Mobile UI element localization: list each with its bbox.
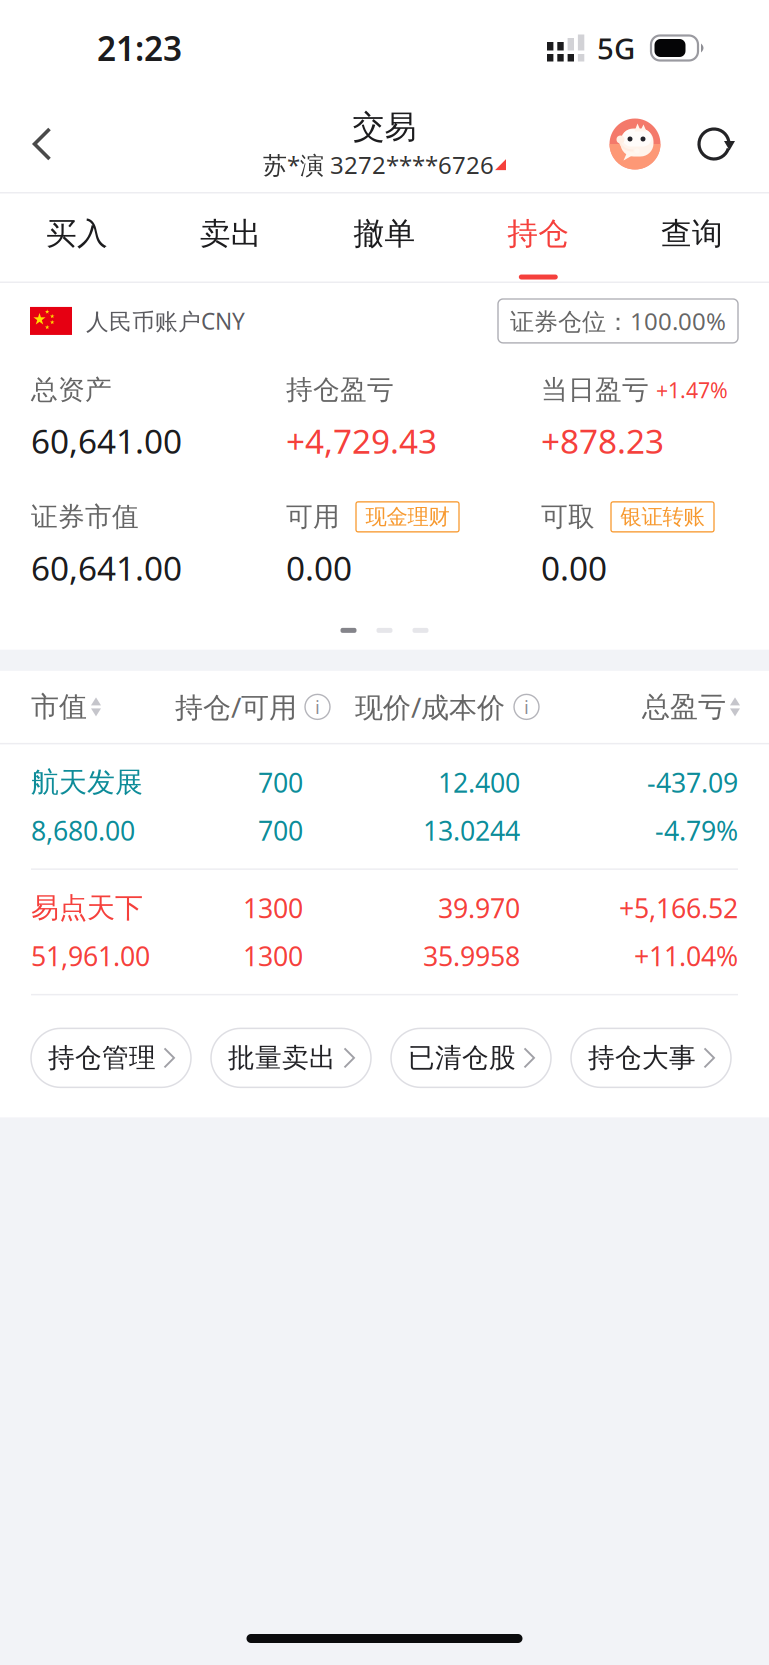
button[interactable]: 买入 [0, 193, 154, 281]
staticText: 持仓管理 [48, 1041, 156, 1074]
staticText: 易点天下 [31, 891, 143, 925]
staticText: 51,961.00 [31, 938, 150, 974]
staticText: 市值 [31, 690, 87, 724]
button[interactable]: 证券仓位：100.00% [498, 299, 738, 343]
staticText: 13.0244 [423, 813, 520, 848]
button[interactable]: Customer service [603, 109, 667, 179]
staticText: +878.23 [541, 419, 664, 463]
staticText: 可用 [286, 500, 340, 533]
button[interactable]: 已清仓股 [391, 1028, 551, 1087]
button[interactable]: 航天发展 [0, 744, 769, 868]
staticText: 总资产 [31, 373, 112, 406]
button[interactable]: 持仓大事 [571, 1028, 731, 1087]
button[interactable]: 持仓/可用 [175, 671, 355, 743]
staticText: 批量卖出 [228, 1041, 336, 1074]
staticText: 卖出 [200, 215, 262, 252]
staticText: 航天发展 [31, 765, 143, 800]
staticText: +5,166.52 [619, 890, 738, 926]
staticText: 8,680.00 [31, 813, 135, 848]
staticText: 60,641.00 [31, 419, 182, 463]
staticText: 39.970 [438, 890, 520, 926]
staticText: +11.04% [634, 938, 738, 974]
staticText: 持仓大事 [588, 1041, 696, 1074]
staticText: -437.09 [647, 765, 738, 800]
staticText: 证券仓位：100.00% [510, 305, 726, 337]
button[interactable]: 卖出 [154, 193, 308, 281]
button[interactable]: 持仓 [461, 193, 615, 281]
staticText: 买入 [46, 215, 108, 252]
staticText: 5G [597, 28, 635, 67]
staticText: i [524, 694, 529, 719]
staticText: 现金理财 [365, 504, 449, 530]
staticText: 证券市值 [31, 500, 139, 533]
staticText: 1300 [243, 890, 303, 926]
staticText: 12.400 [438, 765, 520, 800]
staticText: 撤单 [353, 215, 415, 252]
staticText: 60,641.00 [31, 546, 182, 590]
button[interactable]: Back [2, 104, 82, 184]
staticText: +4,729.43 [286, 419, 437, 463]
button[interactable]: 总盈亏 [642, 671, 740, 743]
button[interactable]: 现价/成本价 [355, 671, 549, 743]
button[interactable]: 撤单 [308, 193, 461, 281]
button[interactable]: Refresh [688, 109, 744, 179]
staticText: 35.9958 [423, 938, 520, 974]
staticText: i [315, 694, 320, 719]
button[interactable]: 查询 [615, 193, 769, 281]
staticText: -4.79% [655, 813, 738, 848]
staticText: 交易 [352, 107, 416, 147]
staticText: 1300 [243, 938, 303, 974]
staticText: 0.00 [286, 546, 352, 590]
staticText: 0.00 [541, 546, 607, 590]
button[interactable]: 批量卖出 [211, 1028, 371, 1087]
staticText: 可取 [541, 500, 595, 533]
staticText: 总盈亏 [642, 690, 726, 724]
staticText: 苏*演 3272****6726 [263, 149, 494, 181]
button[interactable]: 易点天下 [0, 870, 769, 994]
staticText: 持仓 [507, 215, 569, 252]
staticText: 21:23 [97, 26, 182, 70]
staticText: 当日盈亏 [541, 373, 649, 406]
staticText: 700 [258, 813, 303, 848]
staticText: 银证转账 [620, 504, 704, 530]
staticText: 持仓盈亏 [286, 373, 394, 406]
staticText: +1.47% [656, 376, 728, 404]
staticText: 700 [258, 765, 303, 800]
staticText: 持仓/可用 [175, 688, 297, 725]
staticText: 人民币账户CNY [86, 306, 245, 336]
button[interactable]: 持仓管理 [31, 1028, 191, 1087]
staticText: 查询 [661, 215, 723, 252]
staticText: 现价/成本价 [355, 688, 505, 725]
staticText: 已清仓股 [408, 1041, 516, 1074]
button[interactable]: 市值 [31, 671, 175, 743]
